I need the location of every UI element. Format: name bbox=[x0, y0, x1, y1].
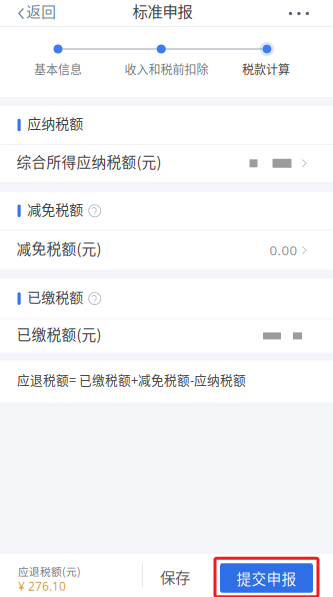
button[interactable]: 保存 bbox=[143, 554, 215, 597]
staticText: 0.00 bbox=[269, 241, 297, 259]
staticText: 基本信息 bbox=[34, 60, 82, 78]
staticText: 减免税额(元) bbox=[16, 237, 101, 259]
staticText: 减免税额 bbox=[27, 199, 83, 219]
staticText: 标准申报 bbox=[132, 0, 192, 22]
staticText: 提交申报 bbox=[236, 567, 296, 589]
button[interactable]: 综合所得应纳税额(元) bbox=[0, 145, 333, 182]
button[interactable]: 更多 bbox=[275, 0, 333, 27]
staticText: 综合所得应纳税额(元) bbox=[16, 151, 161, 172]
staticText: ¥ 276.10 bbox=[18, 578, 66, 594]
button[interactable]: 减免税额(元) bbox=[0, 231, 333, 270]
staticText: 应退税额= 已缴税额+减免税额-应纳税额 bbox=[17, 370, 246, 388]
staticText: 保存 bbox=[160, 565, 190, 588]
button[interactable]: 提交申报 bbox=[215, 556, 318, 595]
staticText: 返回 bbox=[26, 0, 56, 22]
staticText: 应纳税额 bbox=[27, 113, 83, 133]
button[interactable]: 返回 bbox=[0, 0, 66, 27]
staticText: 收入和税前扣除 bbox=[124, 60, 208, 78]
staticText: 已缴税额(元) bbox=[16, 323, 101, 344]
staticText: 税款计算 bbox=[242, 60, 290, 78]
staticText: 已缴税额 bbox=[27, 286, 83, 307]
staticText: 应退税额(元) bbox=[18, 563, 81, 579]
